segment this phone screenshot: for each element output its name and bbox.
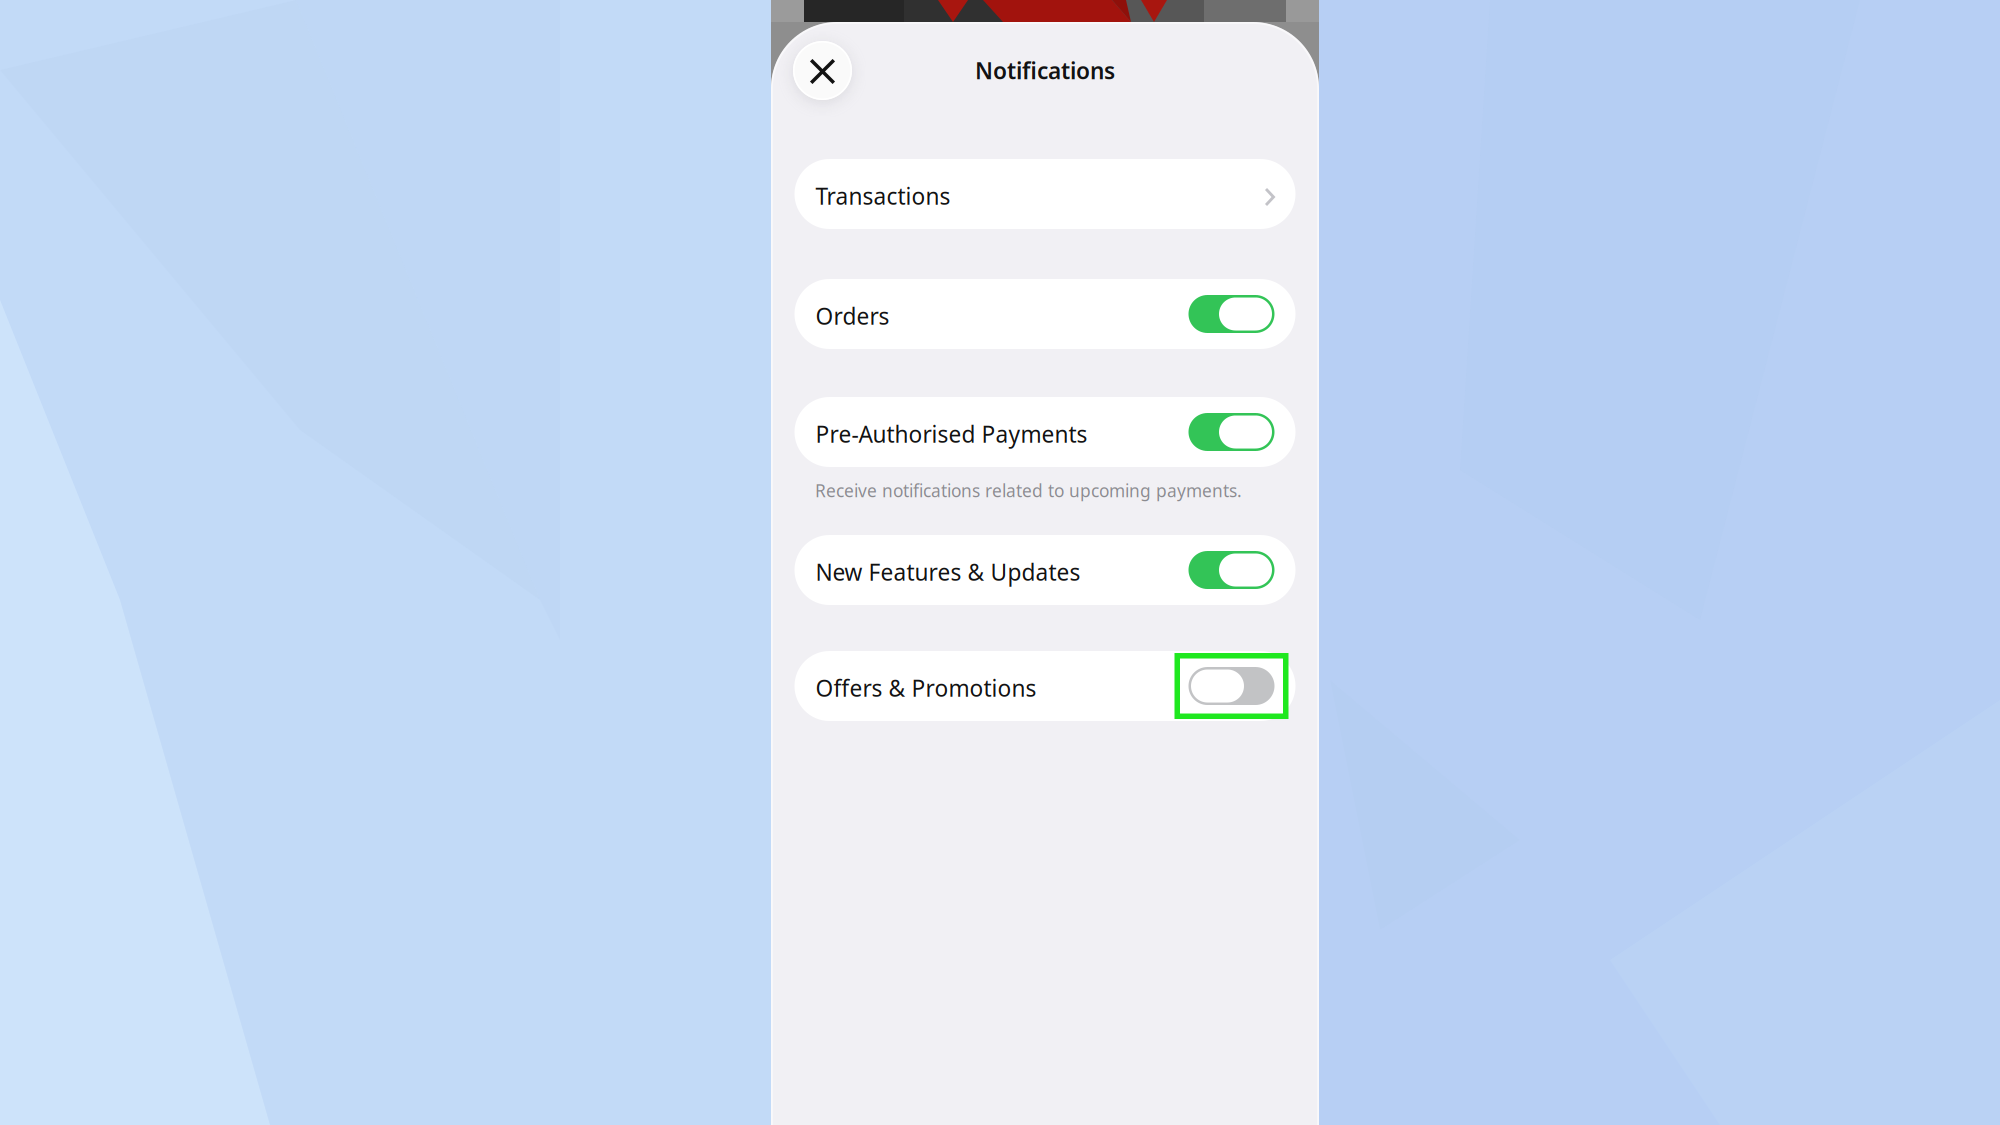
staticText: Pre-Authorised Payments	[815, 419, 1087, 449]
button[interactable]: Pre-Authorised Payments	[794, 397, 1295, 467]
button[interactable]: New Features & Updates	[794, 535, 1295, 605]
button[interactable]: Orders	[794, 279, 1295, 349]
button[interactable]: Offers & Promotions	[794, 651, 1295, 721]
staticText: Notifications	[975, 55, 1115, 85]
button[interactable]: Transactions	[794, 159, 1295, 229]
staticText: Receive notifications related to upcomin…	[815, 479, 1242, 502]
button[interactable]: Close	[793, 41, 852, 100]
staticText: Offers & Promotions	[815, 673, 1036, 703]
staticText: New Features & Updates	[815, 557, 1080, 587]
staticText: Transactions	[815, 181, 950, 211]
staticText: Orders	[815, 301, 889, 331]
